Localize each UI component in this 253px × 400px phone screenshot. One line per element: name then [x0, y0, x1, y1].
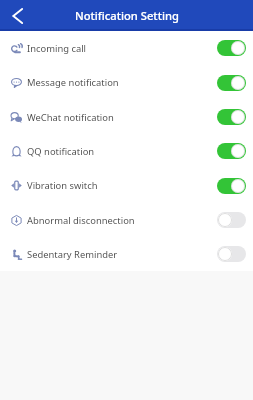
- button[interactable]: [217, 246, 246, 262]
- button[interactable]: Message notification: [0, 65, 253, 100]
- button[interactable]: [217, 75, 246, 91]
- staticText: Notification Setting: [75, 8, 179, 23]
- button[interactable]: [217, 109, 246, 125]
- button[interactable]: Incoming call: [0, 31, 253, 65]
- staticText: Sedentary Reminder: [27, 248, 118, 261]
- button[interactable]: Abnormal disconnection: [0, 203, 253, 237]
- button[interactable]: [217, 212, 246, 228]
- button[interactable]: [217, 143, 246, 159]
- button[interactable]: WeChat notification: [0, 100, 253, 134]
- button[interactable]: Sedentary Reminder: [0, 237, 253, 271]
- button[interactable]: [217, 178, 246, 194]
- staticText: Incoming call: [27, 42, 87, 55]
- button[interactable]: Vibration switch: [0, 168, 253, 203]
- button[interactable]: [217, 40, 246, 56]
- staticText: Abnormal disconnection: [27, 214, 135, 227]
- staticText: WeChat notification: [27, 111, 114, 124]
- staticText: QQ notification: [27, 145, 95, 158]
- staticText: Message notification: [27, 76, 119, 89]
- staticText: Vibration switch: [27, 179, 98, 192]
- button[interactable]: QQ notification: [0, 134, 253, 168]
- button[interactable]: Back: [0, 1, 30, 31]
